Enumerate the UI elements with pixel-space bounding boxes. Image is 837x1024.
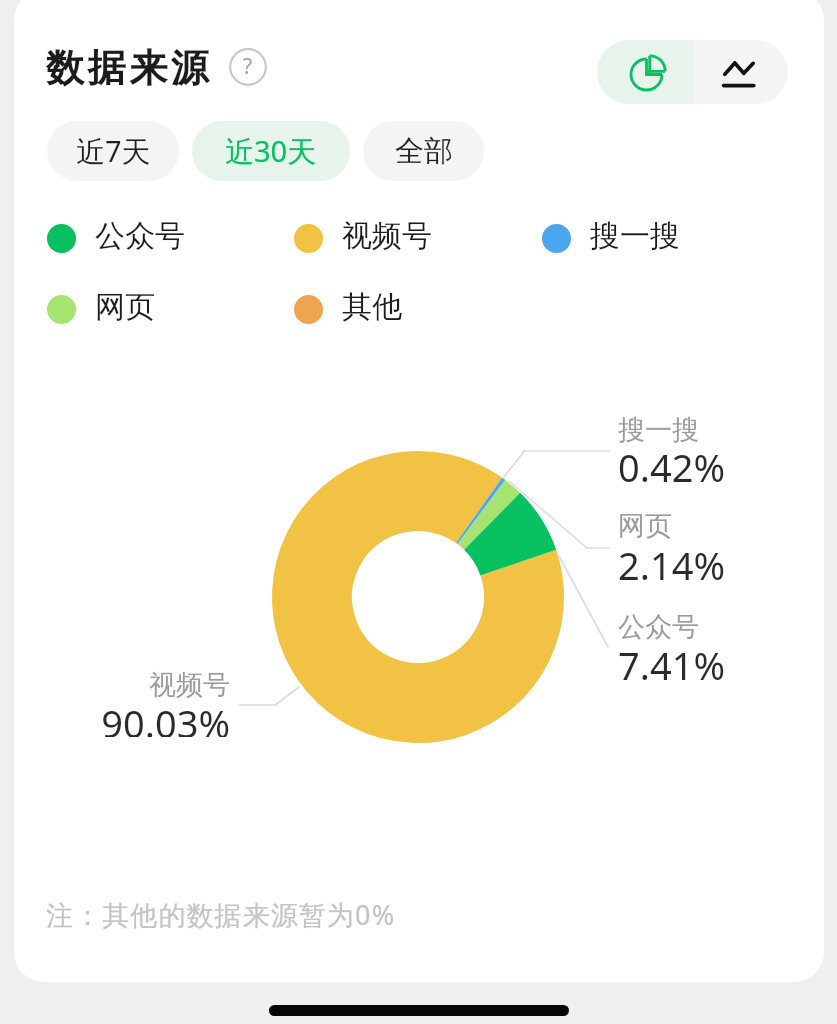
staticText: 近7天	[76, 131, 151, 171]
staticText: 网页	[618, 509, 672, 543]
button[interactable]: 帮助说明	[229, 48, 267, 86]
staticText: 搜一搜	[590, 217, 680, 255]
staticText: 视频号	[342, 217, 432, 255]
staticText: ?	[243, 52, 253, 81]
button[interactable]: 近30天	[192, 121, 350, 181]
button[interactable]: 饼图视图	[597, 40, 693, 104]
staticText: 注：其他的数据来源暂为0%	[46, 896, 396, 933]
staticText: 近30天	[225, 131, 317, 171]
staticText: 0.42%	[618, 441, 725, 493]
button[interactable]: 折线图视图	[693, 40, 788, 104]
staticText: 其他	[342, 288, 402, 326]
staticText: 搜一搜	[618, 413, 699, 447]
button[interactable]: 近7天	[47, 121, 179, 181]
staticText: 数据来源	[46, 44, 213, 92]
staticText: 7.41%	[618, 639, 725, 691]
staticText: 网页	[95, 288, 155, 326]
staticText: 90.03%	[68, 697, 230, 737]
staticText: 视频号	[68, 668, 230, 698]
button[interactable]: 全部	[363, 121, 484, 181]
staticText: 全部	[395, 133, 453, 170]
staticText: 公众号	[618, 610, 699, 644]
staticText: 2.14%	[618, 539, 725, 591]
staticText: 公众号	[95, 217, 185, 255]
